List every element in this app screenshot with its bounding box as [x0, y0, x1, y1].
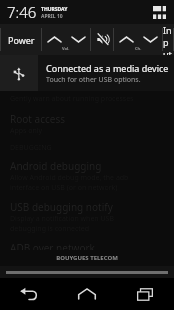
button[interactable]: Connected as a media device: [0, 55, 174, 91]
staticText: ADB over network: [10, 241, 95, 250]
staticText: USB debugging notify: [10, 200, 113, 214]
staticText: Input: [163, 24, 173, 55]
staticText: Vol.: [62, 46, 70, 51]
staticText: APRIL 10: [41, 13, 63, 20]
staticText: Android debugging: [10, 159, 102, 173]
button[interactable]: Recent apps: [116, 278, 174, 310]
button[interactable]: Close notification shade: [0, 266, 174, 278]
button[interactable]: Power: [1, 24, 41, 55]
staticText: THURSDAY: [41, 6, 68, 13]
button[interactable]: Quick settings: [149, 2, 169, 22]
button[interactable]: Ch. up: [114, 24, 138, 55]
button[interactable]: Vol. up: [42, 24, 66, 55]
button[interactable]: Vol. down: [66, 24, 90, 55]
button[interactable]: Mute: [91, 24, 113, 55]
staticText: Ch.: [135, 46, 142, 51]
staticText: Touch for other USB options.: [46, 75, 141, 85]
button[interactable]: Input: [163, 24, 173, 55]
button[interactable]: Home: [58, 278, 116, 310]
staticText: Power: [8, 34, 35, 46]
staticText: Root access: [10, 112, 65, 126]
staticText: Connected as a media device: [46, 62, 169, 74]
button[interactable]: Back: [0, 278, 58, 310]
staticText: BOUYGUES TELECOM: [56, 254, 118, 262]
button[interactable]: Ch. down: [138, 24, 162, 55]
staticText: 7:46: [7, 2, 37, 22]
